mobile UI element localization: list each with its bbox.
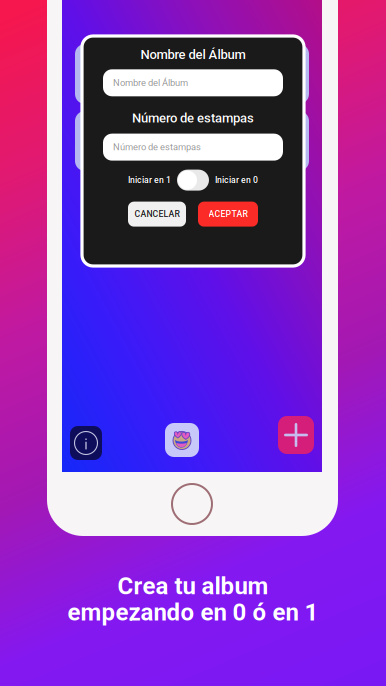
staticText: Iniciar en 0 <box>215 175 258 185</box>
staticText: empezando en 0 ó en 1 <box>67 598 318 626</box>
button[interactable]: ACEPTAR <box>198 202 258 227</box>
staticText: ACEPTAR <box>208 209 247 219</box>
staticText: Número de estampas <box>113 142 201 153</box>
staticText: Crea tu album <box>117 572 268 600</box>
button[interactable]: Start numbering at 1 or 0 <box>177 170 209 191</box>
button[interactable]: Information <box>70 426 102 460</box>
staticText: Iniciar en 1 <box>128 175 171 185</box>
staticText: CANCELAR <box>134 209 179 219</box>
staticText: Nombre del Álbum <box>113 77 188 88</box>
staticText: Nombre del Álbum <box>140 47 245 62</box>
button[interactable]: Stickers <box>165 423 199 457</box>
button[interactable]: Add album <box>278 416 314 454</box>
button[interactable]: CANCELAR <box>128 202 186 227</box>
staticText: Número de estampas <box>132 110 254 126</box>
